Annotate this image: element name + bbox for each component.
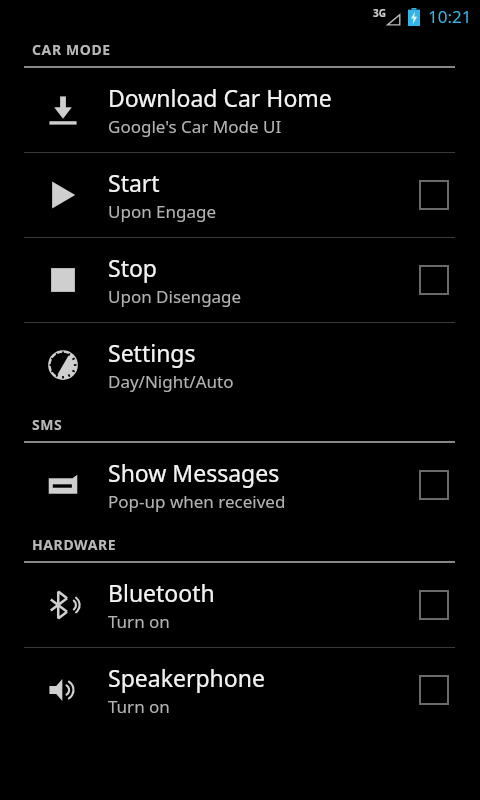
button[interactable]: Bluetooth	[0, 563, 480, 647]
staticText: Google's Car Mode UI	[108, 115, 282, 138]
button[interactable]: Toggle Speakerphone	[411, 667, 457, 713]
button[interactable]: Toggle Stop	[411, 257, 457, 303]
staticText: Pop-up when received	[108, 490, 286, 513]
button[interactable]: Speakerphone	[0, 648, 480, 732]
button[interactable]: Toggle Show Messages	[411, 462, 457, 508]
staticText: HARDWARE	[32, 535, 117, 554]
staticText: Day/Night/Auto	[108, 370, 234, 393]
staticText: 10:21	[428, 5, 472, 28]
staticText: CAR MODE	[32, 40, 111, 59]
button[interactable]: Toggle Start	[411, 172, 457, 218]
staticText: Download Car Home	[108, 82, 332, 113]
button[interactable]: Settings	[0, 323, 480, 407]
button[interactable]: Download Car Home	[0, 68, 480, 152]
staticText: Turn on	[108, 695, 170, 718]
staticText: Upon Disengage	[108, 285, 242, 308]
staticText: 3G	[373, 6, 386, 20]
button[interactable]: Show Messages	[0, 443, 480, 527]
staticText: Upon Engage	[108, 200, 217, 223]
staticText: SMS	[32, 415, 63, 434]
button[interactable]: Stop	[0, 238, 480, 322]
staticText: Start	[108, 167, 160, 198]
staticText: Stop	[108, 252, 157, 283]
staticText: Bluetooth	[108, 577, 215, 608]
staticText: Turn on	[108, 610, 170, 633]
staticText: Settings	[108, 337, 196, 368]
staticText: Show Messages	[108, 457, 280, 488]
button[interactable]: Start	[0, 153, 480, 237]
staticText: Speakerphone	[108, 662, 265, 693]
button[interactable]: Toggle Bluetooth	[411, 582, 457, 628]
